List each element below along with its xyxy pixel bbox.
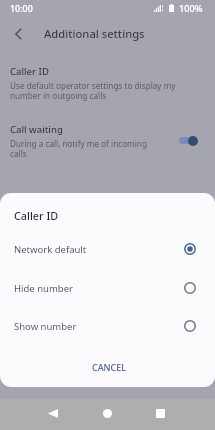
button[interactable]: CANCEL bbox=[86, 356, 133, 378]
staticText: Show number bbox=[14, 320, 184, 333]
staticText: Hide number bbox=[14, 282, 184, 295]
staticText: Additional settings bbox=[44, 26, 145, 41]
staticText: 10:00 bbox=[10, 2, 33, 14]
staticText: 100% bbox=[179, 2, 203, 15]
staticText: Caller ID bbox=[14, 208, 59, 223]
staticText: Call waiting bbox=[10, 123, 63, 136]
button[interactable]: Hide number bbox=[0, 269, 215, 307]
button[interactable]: Back bbox=[6, 22, 30, 46]
button[interactable]: Show number bbox=[0, 307, 215, 345]
staticText: Network default bbox=[14, 243, 184, 256]
staticText: Caller ID bbox=[10, 65, 49, 78]
button[interactable]: Recent apps bbox=[145, 398, 175, 428]
button[interactable]: Call waiting bbox=[0, 124, 215, 164]
staticText: CANCEL bbox=[92, 361, 127, 373]
button[interactable]: Back bbox=[38, 398, 68, 428]
staticText: During a call, notify me of incoming cal… bbox=[10, 138, 147, 159]
button[interactable]: Home bbox=[92, 398, 122, 428]
staticText: Use default operator settings to display… bbox=[10, 80, 176, 101]
button[interactable]: Network default bbox=[0, 230, 215, 268]
button[interactable]: Caller ID bbox=[0, 66, 215, 114]
